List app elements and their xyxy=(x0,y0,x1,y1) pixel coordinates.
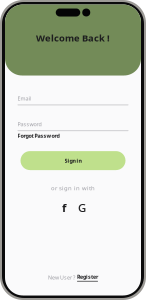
button[interactable]: Sign in with Facebook xyxy=(57,202,71,213)
button[interactable]: Forgot Password xyxy=(17,132,128,139)
staticText: f xyxy=(62,200,66,215)
button[interactable]: Sign in with Google xyxy=(75,202,89,213)
staticText: Password xyxy=(17,121,41,128)
staticText: Email xyxy=(17,95,30,102)
staticText: Forgot Password xyxy=(17,132,59,139)
staticText: G xyxy=(78,200,86,215)
staticText: Sign in xyxy=(64,157,81,164)
button[interactable]: Register xyxy=(77,273,98,281)
button[interactable]: Sign in xyxy=(20,151,125,170)
staticText: Register xyxy=(77,273,98,280)
staticText: Welcome Back ! xyxy=(36,31,110,44)
button[interactable]: Email xyxy=(17,95,128,105)
staticText: New User ? xyxy=(48,274,75,281)
staticText: or sign in with xyxy=(51,184,95,192)
button[interactable]: Password xyxy=(17,121,128,131)
